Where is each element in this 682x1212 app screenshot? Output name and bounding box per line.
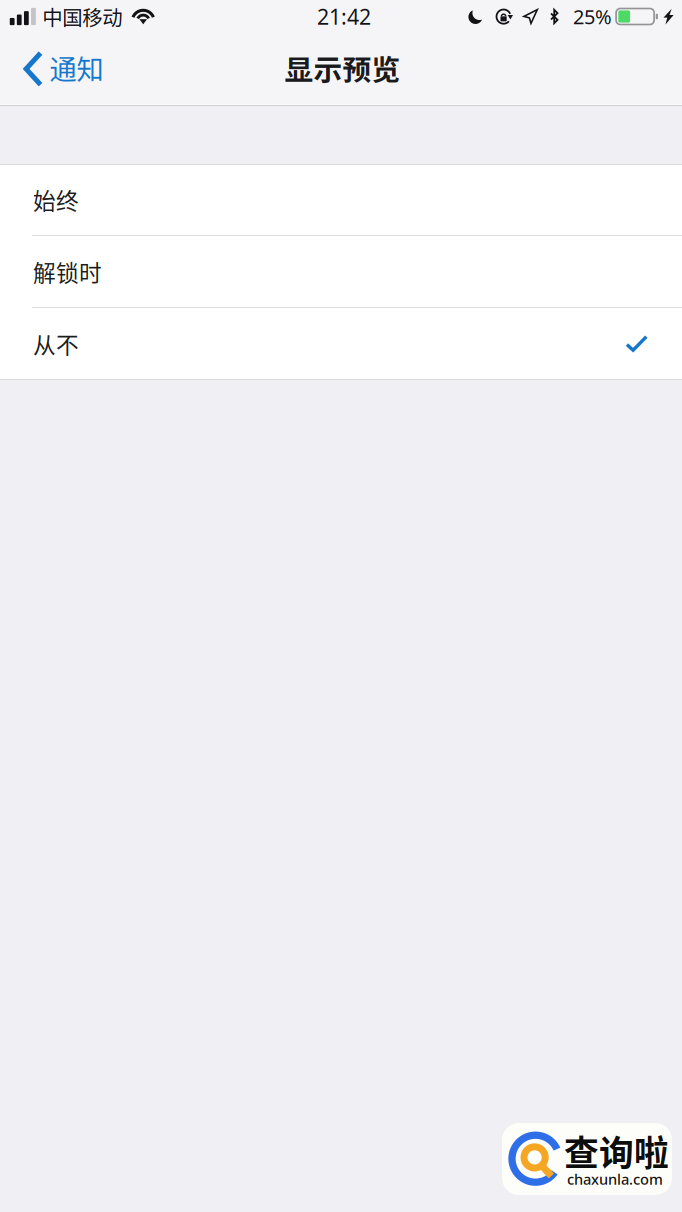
staticText: 解锁时	[33, 255, 102, 288]
button[interactable]: 解锁时	[0, 236, 682, 308]
staticText: 显示预览	[284, 47, 400, 89]
staticText: 通知	[49, 48, 103, 88]
button[interactable]: 从不	[0, 308, 682, 380]
staticText: 查询啦	[564, 1126, 669, 1176]
staticText: chaxunla.com	[567, 1169, 663, 1189]
button[interactable]: 通知	[0, 38, 115, 98]
staticText: 中国移动	[42, 2, 122, 31]
staticText: 从不	[33, 327, 79, 360]
button[interactable]: 始终	[0, 164, 682, 236]
staticText: 25%	[573, 3, 612, 30]
staticText: 始终	[33, 183, 79, 216]
staticText: 21:42	[317, 2, 371, 31]
